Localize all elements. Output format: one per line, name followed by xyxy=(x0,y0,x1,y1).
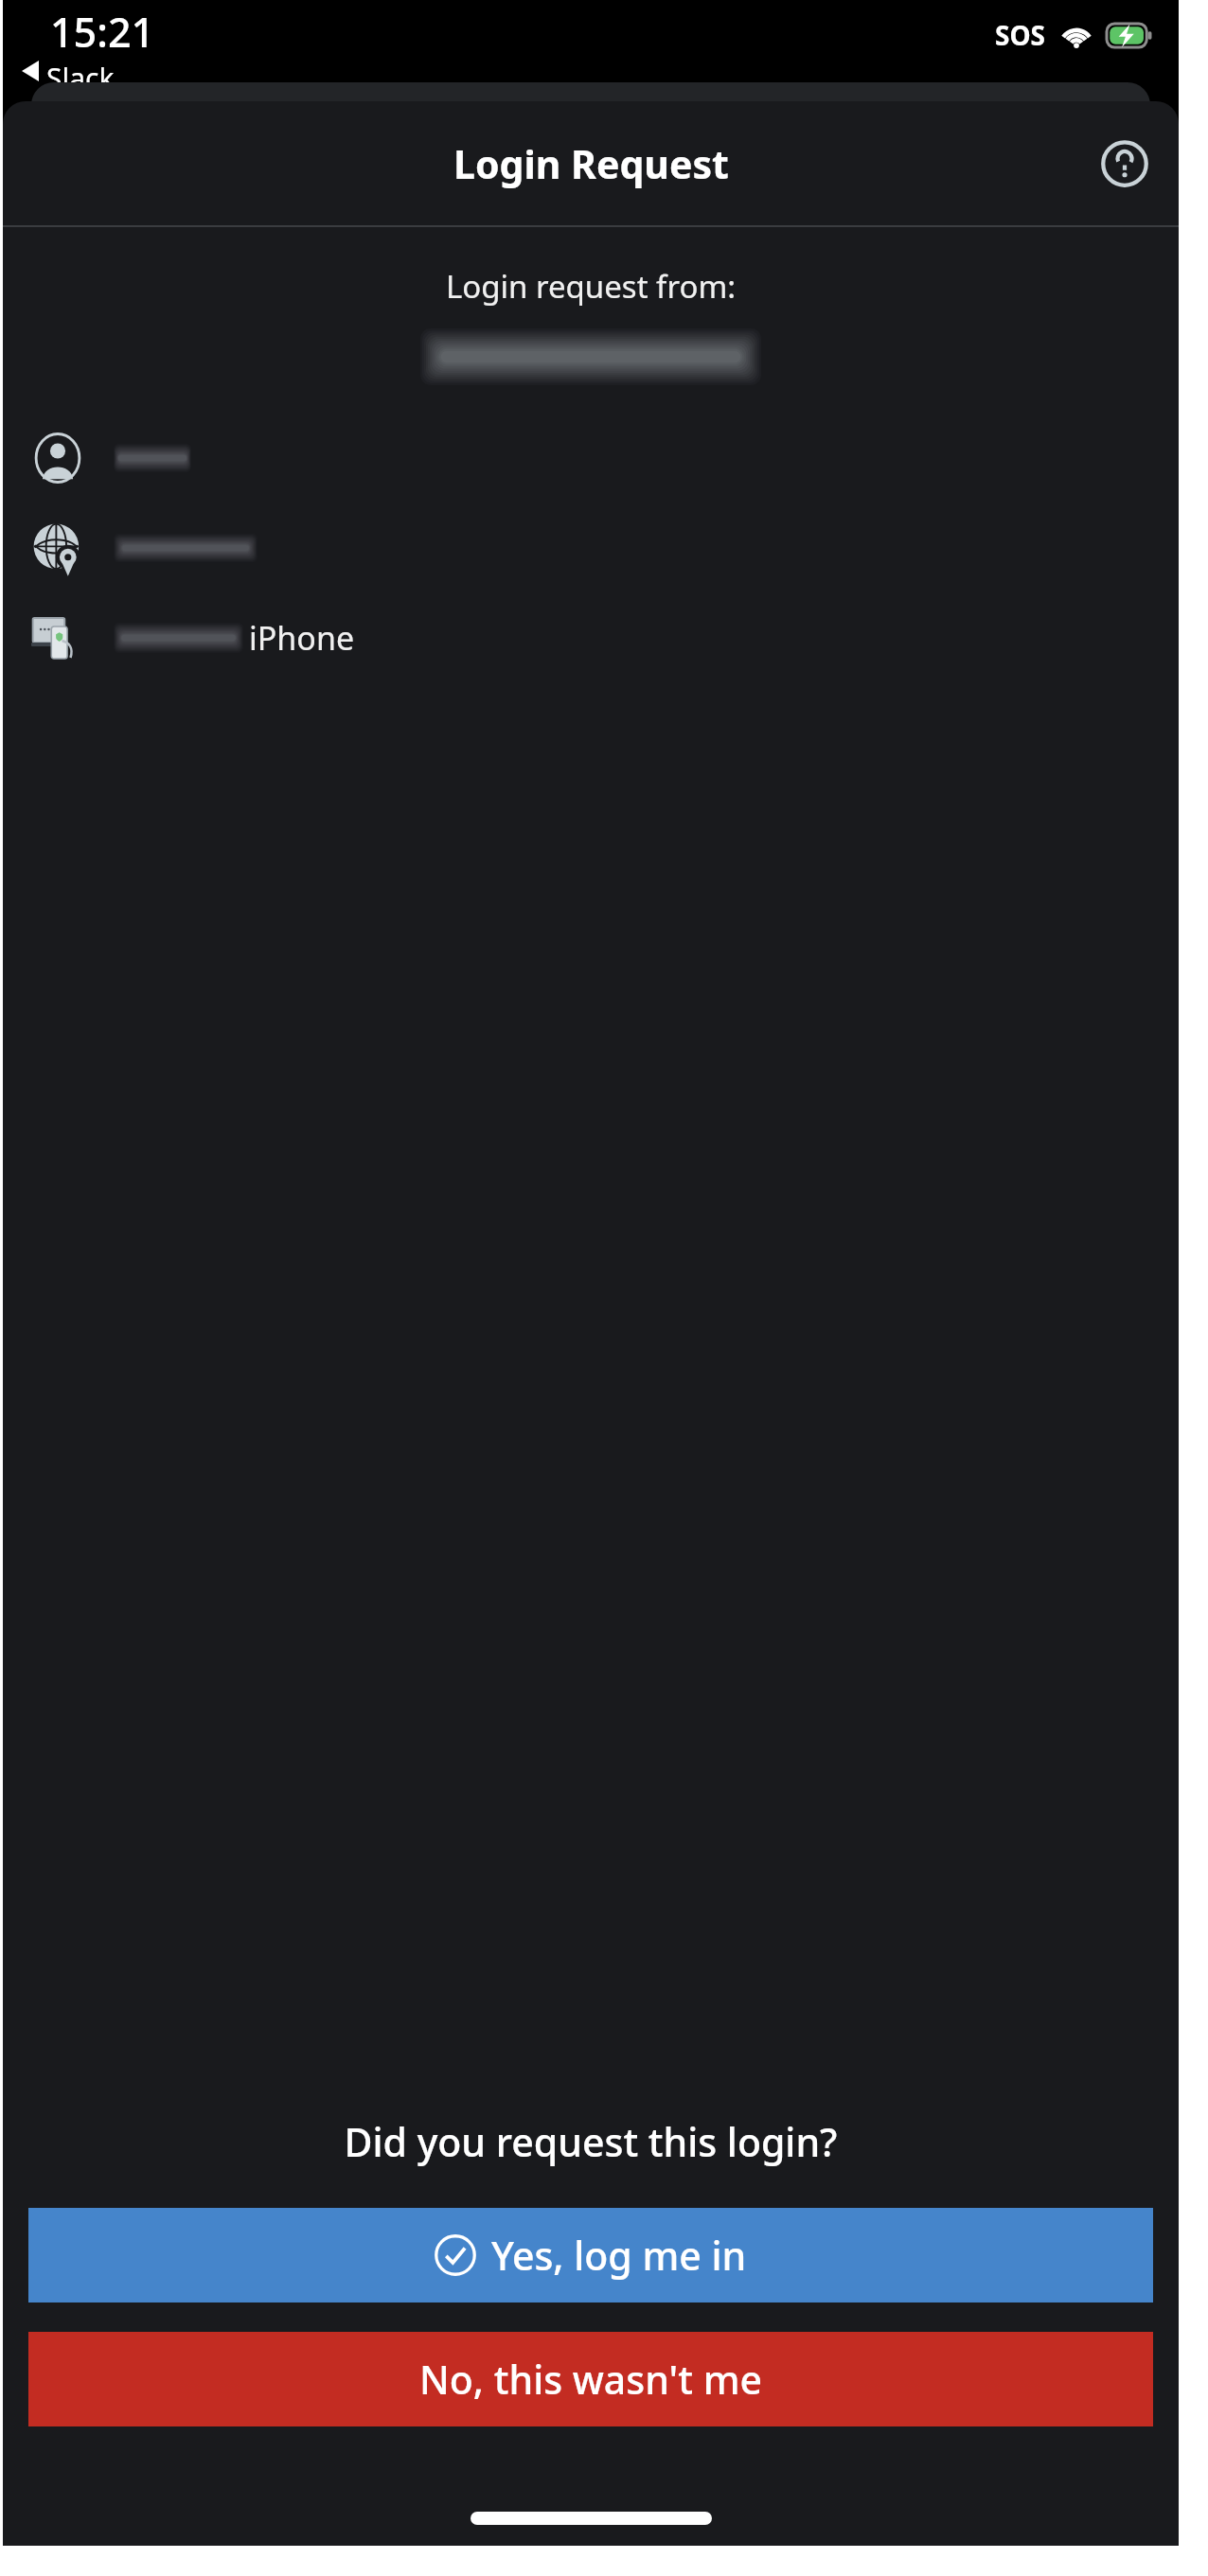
button[interactable]: No, this wasn't me xyxy=(28,2332,1153,2426)
staticText: iPhone xyxy=(249,616,355,660)
button[interactable]: Yes, log me in xyxy=(28,2208,1153,2303)
staticText: SOS xyxy=(995,17,1046,53)
staticText: 15:21 xyxy=(50,4,155,60)
button[interactable]: Help xyxy=(1088,127,1162,201)
staticText: Login Request xyxy=(453,137,729,190)
staticText: Login request from: xyxy=(3,265,1179,308)
staticText: Slack xyxy=(46,59,115,82)
staticText: Yes, log me in xyxy=(491,2229,747,2282)
staticText: No, this wasn't me xyxy=(419,2353,762,2406)
staticText: Did you request this login? xyxy=(3,2115,1179,2168)
